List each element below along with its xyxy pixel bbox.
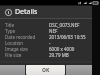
other: Info — [5, 9, 12, 16]
button[interactable]: OK — [26, 65, 65, 75]
staticText: - — [49, 40, 51, 46]
staticText: Image size — [5, 46, 28, 52]
staticText: NEF — [49, 28, 58, 34]
staticText: 6000 x 4000 — [49, 46, 75, 52]
staticText: DSC_0073.NEF — [49, 22, 80, 28]
staticText: Title — [5, 22, 14, 28]
staticText: 29.79 MB — [49, 52, 69, 58]
staticText: Details — [15, 7, 38, 17]
staticText: OK — [42, 67, 50, 74]
staticText: Type — [5, 28, 16, 34]
staticText: Date recorded — [5, 34, 36, 40]
staticText: File size — [5, 52, 22, 58]
staticText: Location — [5, 40, 24, 46]
staticText: 2013/06/03 10:55 — [49, 34, 86, 40]
